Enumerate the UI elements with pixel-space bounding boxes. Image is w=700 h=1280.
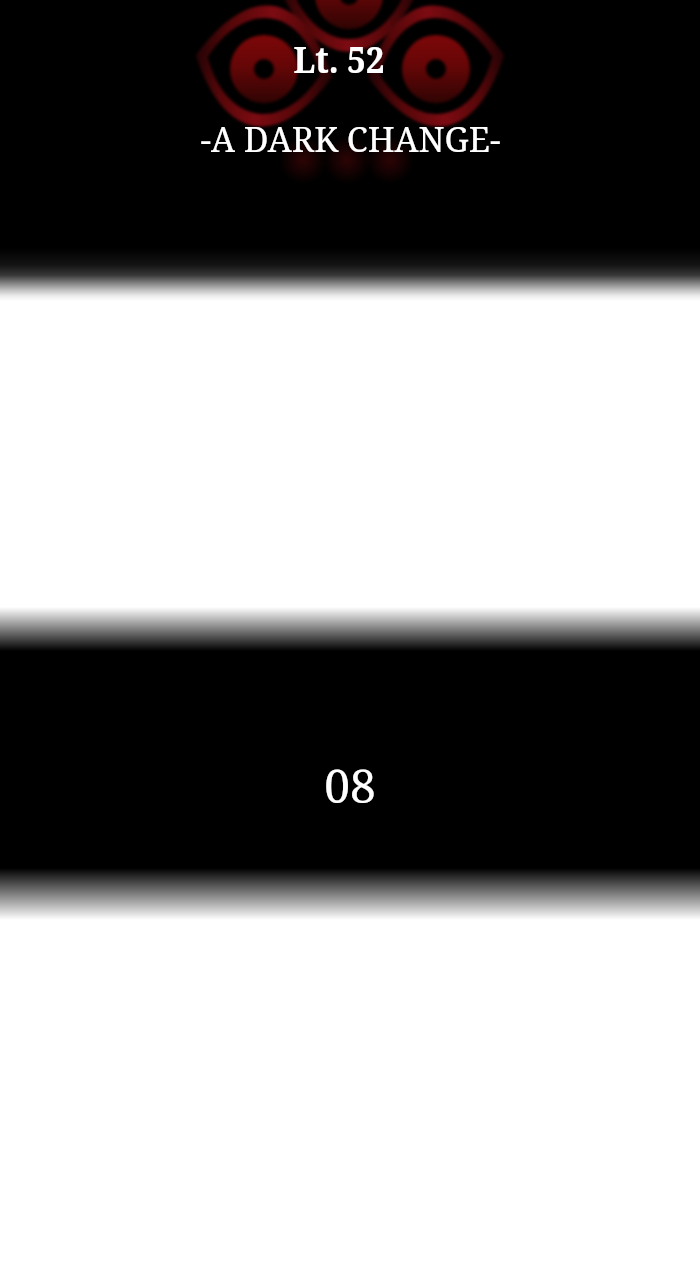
staticText: Lt. 52 — [293, 33, 385, 83]
button[interactable]: Lt. 52 — [0, 0, 700, 1280]
staticText: -A DARK CHANGE- — [200, 116, 501, 162]
staticText: 08 — [324, 754, 376, 817]
